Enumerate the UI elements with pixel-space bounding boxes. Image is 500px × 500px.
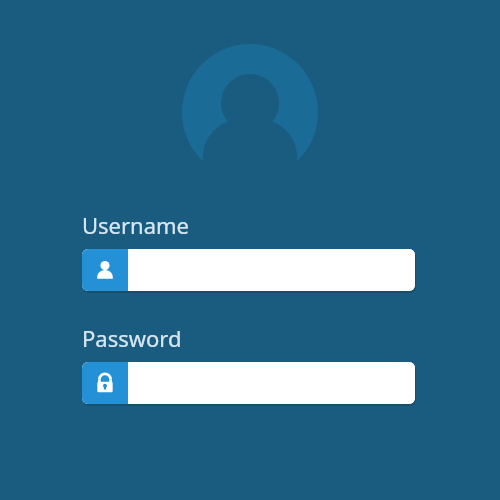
other: Username [82,249,128,291]
button[interactable]: Password [82,362,415,404]
staticText: Password [82,323,182,353]
button[interactable]: Username [82,249,415,291]
staticText: Username [82,210,190,240]
other: Password [82,362,128,404]
